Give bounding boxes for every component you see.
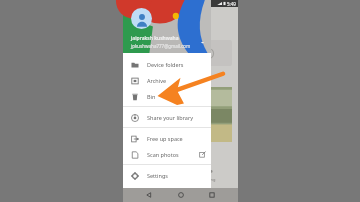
button[interactable]: Send feedback xyxy=(123,183,211,199)
staticText: Archive xyxy=(147,77,167,84)
button[interactable]: Archive xyxy=(123,72,211,88)
button[interactable]: Settings xyxy=(123,167,211,183)
staticText: Settings xyxy=(147,172,168,179)
button[interactable]: Free up space xyxy=(123,130,211,146)
button[interactable]: Switch account xyxy=(199,39,206,46)
staticText: Bin xyxy=(147,93,156,100)
staticText: Scan photos xyxy=(147,151,179,158)
button[interactable]: Home xyxy=(175,189,187,201)
button[interactable]: Device folders xyxy=(123,56,211,72)
button[interactable]: Bin xyxy=(123,88,211,104)
staticText: jaipraksh kushwaha xyxy=(131,35,179,42)
button[interactable]: Share your library xyxy=(123,109,211,125)
staticText: Things xyxy=(187,74,203,81)
button[interactable]: Account avatar xyxy=(131,8,152,29)
staticText: Send feedback xyxy=(147,188,185,195)
button[interactable]: Back xyxy=(143,189,155,201)
button[interactable]: Scan photos xyxy=(123,146,211,162)
staticText: Share your library xyxy=(147,114,193,121)
staticText: 5:49 xyxy=(227,1,236,7)
button[interactable]: Recent apps xyxy=(206,189,218,201)
staticText: Free up space xyxy=(147,135,183,142)
staticText: Device folders xyxy=(147,61,184,68)
staticText: Sharing xyxy=(201,177,216,182)
staticText: jpkushwaha777@gmail.com xyxy=(131,43,191,49)
button[interactable]: Account avatar xyxy=(123,0,211,53)
